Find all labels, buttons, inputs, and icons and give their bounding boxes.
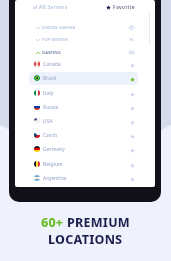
button[interactable]: P2P SERVER	[15, 33, 155, 46]
button[interactable]: Brasil	[15, 71, 155, 85]
button[interactable]: All Servers	[15, 0, 85, 14]
button[interactable]: Canada	[15, 57, 155, 71]
staticText: P2P SERVER	[42, 37, 68, 43]
button[interactable]: ONION SERVER	[15, 21, 155, 34]
staticText: Brasil	[43, 75, 57, 82]
staticText: Russia	[43, 104, 59, 111]
staticText: ONION SERVER	[42, 25, 76, 31]
staticText: Germany	[43, 146, 65, 153]
button[interactable]: Italy	[15, 86, 155, 100]
staticText: Italy	[43, 90, 54, 97]
button[interactable]: Argentina	[15, 171, 155, 185]
button[interactable]: Russia	[15, 100, 155, 114]
staticText: Argentina	[43, 175, 67, 182]
staticText: PREMIUM	[67, 214, 130, 231]
button[interactable]: Favorite	[85, 0, 155, 14]
button[interactable]: Czech	[15, 128, 155, 142]
staticText: GAMING	[42, 50, 62, 56]
staticText: LOCATIONS	[48, 231, 123, 248]
button[interactable]: Belgium	[15, 157, 155, 171]
staticText: Favorite	[113, 4, 135, 11]
staticText: Czech	[43, 132, 58, 139]
staticText: 60+	[41, 214, 67, 231]
button[interactable]: GAMING	[15, 46, 155, 59]
staticText: Belgium	[43, 161, 63, 168]
staticText: Canada	[43, 61, 61, 68]
staticText: All Servers	[39, 4, 68, 11]
button[interactable]: USA	[15, 114, 155, 128]
button[interactable]: Germany	[15, 142, 155, 156]
staticText: USA	[43, 118, 53, 125]
